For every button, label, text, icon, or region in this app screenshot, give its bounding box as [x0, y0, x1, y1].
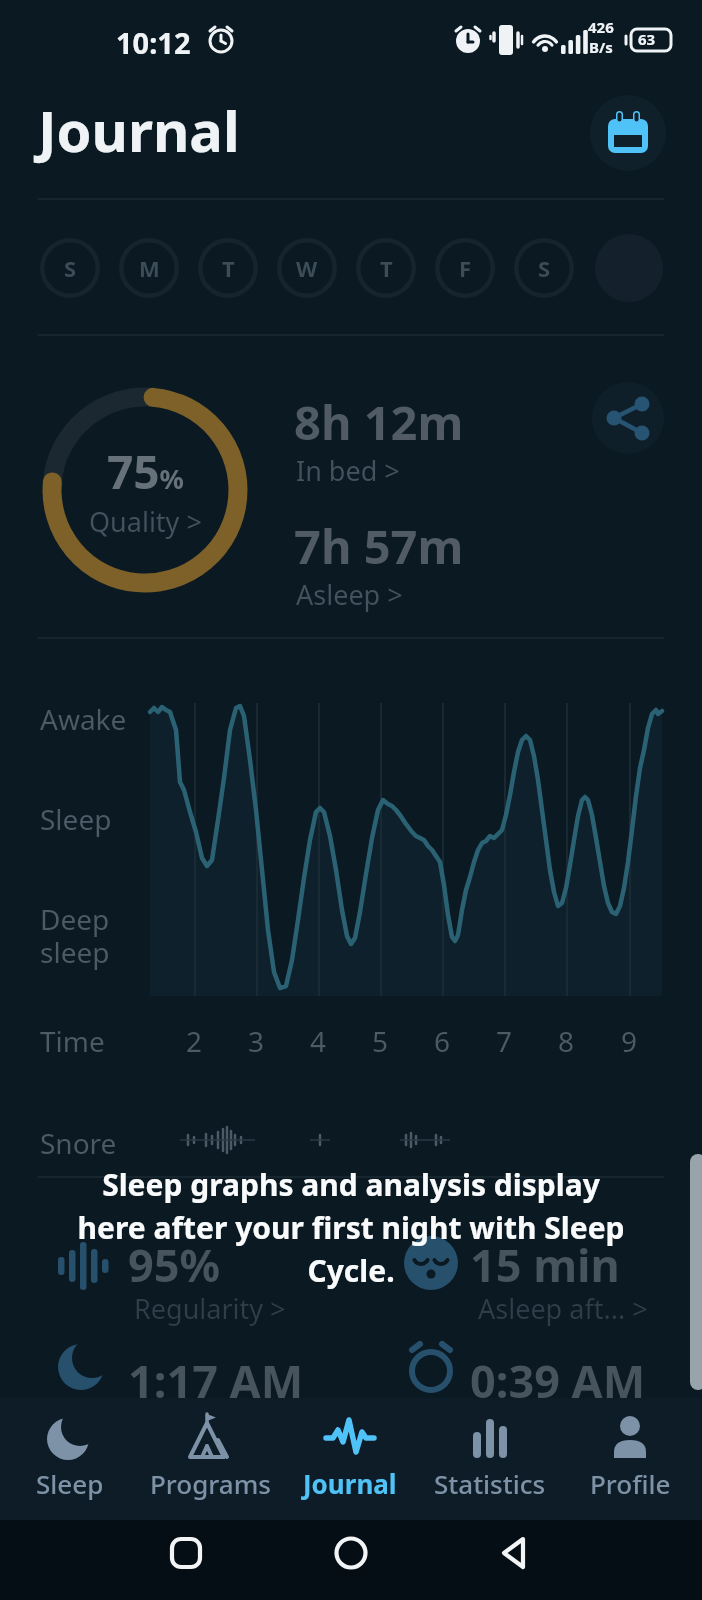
staticText: Asleep >	[296, 576, 403, 613]
button[interactable]	[592, 382, 664, 454]
staticText: 4	[310, 1022, 327, 1060]
button[interactable]: Journal	[280, 1398, 420, 1520]
staticText: 8h 12m	[294, 390, 464, 454]
staticText: Snore	[40, 1124, 117, 1162]
staticText: 5	[372, 1022, 389, 1060]
staticText: 7	[496, 1022, 513, 1060]
staticText: 1:17 AM	[128, 1350, 304, 1411]
staticText: Profile	[590, 1466, 671, 1501]
staticText: S	[64, 253, 77, 283]
button[interactable]	[327, 1529, 375, 1577]
staticText: Asleep aft... >	[478, 1290, 648, 1327]
staticText: 75%	[107, 440, 184, 503]
staticText: Sleep	[40, 800, 112, 838]
staticText: 10:12	[116, 23, 191, 62]
button[interactable]: W	[277, 238, 337, 298]
button[interactable]: T	[198, 238, 258, 298]
staticText: T	[380, 253, 393, 283]
staticText: 7h 57m	[294, 514, 464, 578]
staticText: 426	[588, 17, 614, 37]
button[interactable]: 15 min	[390, 1226, 690, 1326]
button[interactable]	[162, 1529, 210, 1577]
staticText: T	[222, 253, 235, 283]
staticText: Programs	[150, 1466, 271, 1501]
staticText: 6	[434, 1022, 451, 1060]
staticText: 8	[558, 1022, 575, 1060]
button[interactable]: M	[119, 238, 179, 298]
staticText: 0:39 AM	[470, 1350, 646, 1411]
staticText: F	[459, 253, 472, 283]
staticText: M	[139, 253, 160, 283]
button[interactable]: 95%	[40, 1226, 340, 1326]
staticText: S	[538, 253, 551, 283]
staticText: sleep	[40, 933, 110, 971]
staticText: 3	[248, 1022, 265, 1060]
staticText: Sleep	[36, 1466, 104, 1501]
staticText: 9	[621, 1022, 638, 1060]
button[interactable]: S	[40, 238, 100, 298]
staticText: Deep	[40, 900, 110, 938]
button[interactable]: F	[435, 238, 495, 298]
staticText: Journal	[303, 1466, 397, 1501]
staticText: Journal	[38, 92, 240, 168]
staticText: B/s	[589, 37, 613, 57]
button[interactable]: 75%	[40, 385, 250, 595]
staticText: Statistics	[434, 1466, 546, 1501]
staticText: 2	[186, 1022, 203, 1060]
button[interactable]: S	[514, 238, 574, 298]
staticText: Regularity >	[134, 1290, 286, 1327]
staticText: Quality >	[89, 503, 202, 540]
staticText: 15 min	[470, 1234, 620, 1295]
button[interactable]	[491, 1529, 539, 1577]
button[interactable]: Programs	[140, 1398, 280, 1520]
staticText: In bed >	[296, 452, 400, 489]
staticText: 95%	[128, 1234, 221, 1295]
button[interactable]: 8h 12m	[294, 390, 464, 615]
staticText: Awake	[40, 700, 127, 738]
staticText: Sleep graphs and analysis display here a…	[77, 1164, 625, 1291]
staticText: 63	[638, 29, 656, 49]
button[interactable]: T	[356, 238, 416, 298]
button[interactable]	[595, 234, 663, 302]
button[interactable]: Sleep	[0, 1398, 140, 1520]
staticText: Time	[40, 1022, 105, 1060]
button[interactable]: Profile	[560, 1398, 700, 1520]
staticText: W	[296, 253, 318, 283]
button[interactable]	[590, 95, 666, 171]
button[interactable]: Statistics	[420, 1398, 560, 1520]
